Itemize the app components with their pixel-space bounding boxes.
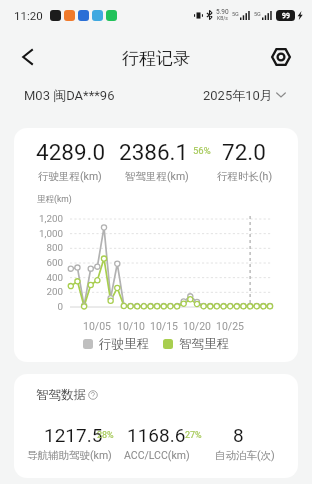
staticText: 400	[46, 272, 63, 283]
staticText: 行程记录	[122, 48, 190, 69]
staticText: 200	[46, 286, 63, 297]
staticText: KB/s	[217, 15, 228, 21]
staticText: 99	[282, 12, 290, 20]
staticText: 里程(km)	[37, 194, 72, 205]
staticText: 1,000	[39, 228, 63, 239]
staticText: 行驶里程	[99, 336, 149, 352]
button[interactable]: 2025年10月	[203, 87, 286, 103]
staticText: 5G	[254, 11, 261, 17]
staticText: 8	[233, 424, 244, 446]
staticText: 1168.6	[127, 424, 186, 446]
staticText: 行驶里程(km)	[38, 170, 102, 183]
staticText: 11:20	[14, 9, 43, 22]
button[interactable]: Back	[9, 39, 45, 75]
staticText: 2386.1	[119, 139, 189, 165]
staticText: 2025年10月	[203, 87, 273, 103]
staticText: 10/25	[216, 320, 244, 332]
staticText: 1217.5	[44, 424, 103, 446]
staticText: 600	[46, 257, 63, 268]
staticText: 导航辅助驾驶(km)	[27, 449, 112, 462]
staticText: 智驾里程	[179, 336, 229, 352]
staticText: 智驾里程(km)	[125, 170, 189, 183]
staticText: 10/20	[183, 320, 211, 332]
staticText: 28%	[97, 430, 114, 441]
staticText: M03 闽DA***96	[24, 87, 115, 103]
staticText: 10/10	[117, 320, 145, 332]
staticText: 1,200	[39, 213, 63, 224]
staticText: 自动泊车(次)	[215, 449, 275, 462]
staticText: 4289.0	[36, 139, 106, 165]
staticText: ACC/LCC(km)	[124, 449, 190, 461]
button[interactable]: Settings	[263, 39, 299, 75]
staticText: 5G	[232, 11, 239, 17]
staticText: 智驾数据	[36, 387, 86, 403]
staticText: 10/15	[150, 320, 178, 332]
staticText: 800	[46, 242, 63, 253]
staticText: 10/05	[83, 320, 111, 332]
staticText: 0	[57, 301, 63, 312]
staticText: 5.90	[216, 8, 229, 16]
staticText: 72.0	[222, 139, 266, 165]
staticText: 行程时长(h)	[217, 170, 273, 183]
staticText: 56%	[193, 145, 211, 156]
staticText: 27%	[185, 430, 202, 441]
